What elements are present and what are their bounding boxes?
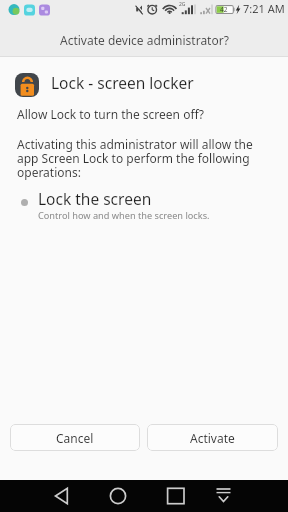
button[interactable]: Cancel (10, 424, 140, 451)
button[interactable]: Activate (147, 424, 278, 451)
button[interactable] (72, 480, 144, 512)
button[interactable] (0, 480, 72, 512)
button[interactable]: Lock the screen (21, 188, 288, 222)
staticText: Activating this administrator will allow… (17, 136, 253, 181)
staticText: Control how and when the screen locks. (38, 209, 210, 222)
staticText: Allow Lock to turn the screen off? (17, 106, 204, 122)
button[interactable] (144, 480, 216, 512)
staticText: 7:21 AM (243, 1, 285, 16)
button[interactable] (216, 480, 288, 512)
staticText: Lock - screen locker (51, 72, 194, 93)
staticText: Lock the screen (38, 188, 152, 209)
staticText: 42 (220, 5, 228, 14)
staticText: Activate (190, 430, 235, 446)
staticText: 2G (179, 1, 186, 8)
staticText: Activate device administrator? (60, 32, 229, 48)
staticText: Cancel (56, 430, 94, 446)
